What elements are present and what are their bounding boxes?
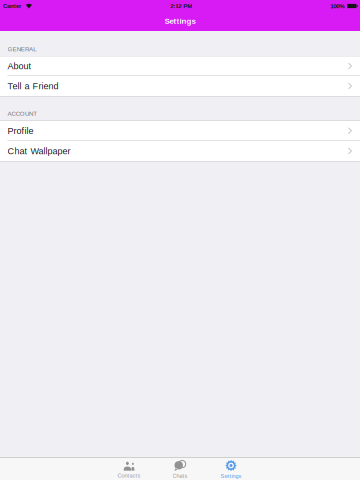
staticText: Settings: [164, 16, 195, 25]
staticText: 100%: [330, 3, 344, 9]
button[interactable]: Settings: [205, 457, 256, 480]
staticText: Contacts: [117, 472, 140, 479]
staticText: GENERAL: [7, 46, 36, 52]
button[interactable]: Contacts: [103, 457, 154, 480]
staticText: Tell a Friend: [7, 81, 58, 91]
button[interactable]: Tell a Friend: [0, 76, 360, 96]
staticText: Carrier: [3, 3, 21, 9]
staticText: Chat Wallpaper: [7, 146, 70, 156]
staticText: About: [7, 61, 31, 71]
staticText: Profile: [7, 126, 33, 136]
staticText: 2:12 PM: [170, 3, 192, 9]
button[interactable]: Profile: [0, 121, 360, 141]
staticText: Chats: [172, 473, 187, 479]
staticText: ACCOUNT: [7, 110, 37, 117]
button[interactable]: Chats: [154, 457, 205, 480]
button[interactable]: About: [0, 56, 360, 76]
button[interactable]: Chat Wallpaper: [0, 141, 360, 161]
staticText: Settings: [220, 473, 241, 479]
